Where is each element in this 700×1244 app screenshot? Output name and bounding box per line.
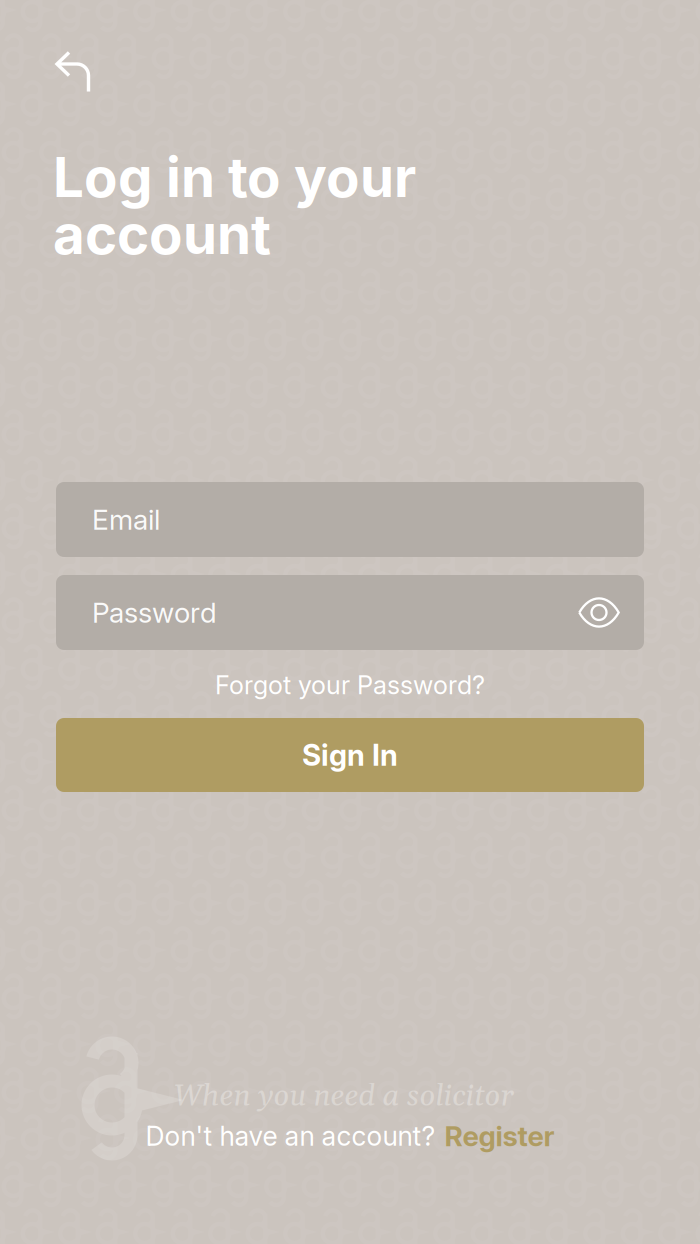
staticText: Log in to your bbox=[53, 144, 416, 210]
button[interactable]: Forgot your Password? bbox=[150, 663, 550, 707]
staticText: Don't have an account? bbox=[145, 1120, 435, 1152]
staticText: Register bbox=[444, 1119, 554, 1153]
staticText: account bbox=[53, 201, 271, 267]
staticText: Sign In bbox=[302, 737, 398, 773]
staticText: Password bbox=[92, 596, 217, 629]
staticText: Email bbox=[92, 503, 160, 536]
button[interactable]: Sign In bbox=[56, 718, 644, 792]
button[interactable]: Register bbox=[444, 1119, 554, 1153]
button[interactable]: Show password bbox=[566, 585, 632, 639]
staticText: Forgot your Password? bbox=[215, 670, 485, 700]
staticText: When you need a solicitor bbox=[173, 1078, 514, 1116]
button[interactable]: Back bbox=[42, 41, 104, 103]
